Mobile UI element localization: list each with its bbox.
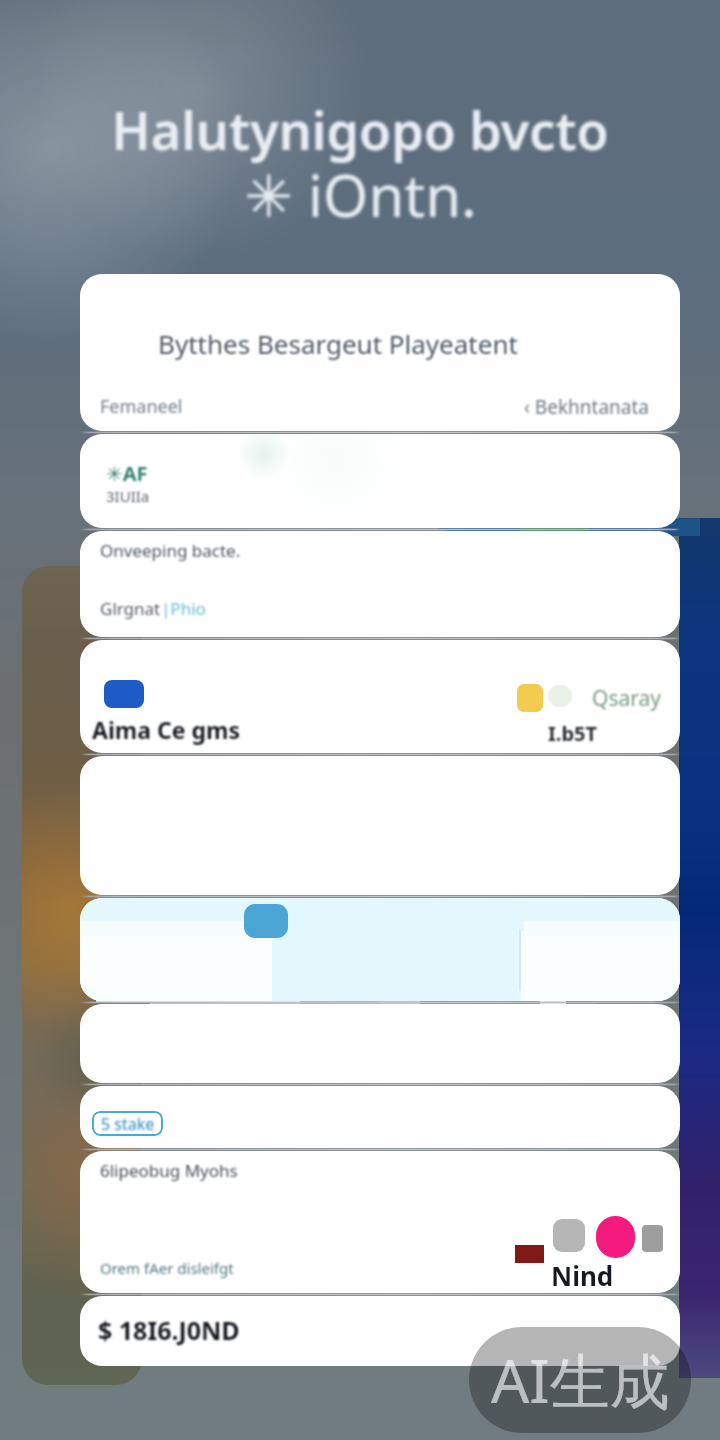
staticText: I.b5T — [548, 720, 598, 747]
staticText: Orem fAer disleifgt — [100, 1258, 234, 1278]
staticText: 5 stake — [101, 1113, 155, 1135]
button[interactable]: ✳AF — [80, 434, 680, 528]
button[interactable] — [80, 898, 680, 1001]
staticText: Glrgnat — [100, 597, 161, 620]
button[interactable]: 5 stake — [92, 1111, 163, 1136]
staticText: ‹ Bekhntanata — [524, 394, 649, 420]
staticText: Femaneel — [100, 394, 183, 419]
button[interactable] — [80, 1004, 680, 1083]
staticText: ✳AF — [106, 460, 148, 487]
button[interactable]: 6lipeobug Myohs — [80, 1151, 680, 1293]
button[interactable]: App icon — [104, 680, 144, 708]
staticText: Nind — [551, 1258, 614, 1293]
staticText: Aima Ce gms — [92, 714, 240, 745]
staticText: Halutynigopo bvcto — [111, 94, 609, 165]
staticText: ✳ iOntn. — [244, 155, 477, 234]
staticText: Onveeping bacte. — [100, 539, 241, 562]
staticText: Qsaray — [592, 684, 661, 713]
button[interactable]: App icon — [80, 640, 680, 753]
staticText: 3IUIIa — [106, 486, 150, 506]
staticText: AI生成 — [491, 1339, 670, 1421]
staticText: Bytthes Besargeut Playeatent — [158, 326, 518, 361]
button[interactable] — [80, 756, 680, 895]
button[interactable]: Bytthes Besargeut Playeatent — [80, 274, 680, 431]
staticText: $ 18I6.J0ND — [98, 1313, 240, 1347]
button[interactable]: Onveeping bacte. — [80, 531, 680, 637]
staticText: |Phio — [161, 597, 206, 620]
button[interactable]: $ 18I6.J0ND — [80, 1296, 680, 1366]
staticText: 6lipeobug Myohs — [100, 1159, 238, 1182]
button[interactable]: 5 stake — [80, 1086, 680, 1148]
